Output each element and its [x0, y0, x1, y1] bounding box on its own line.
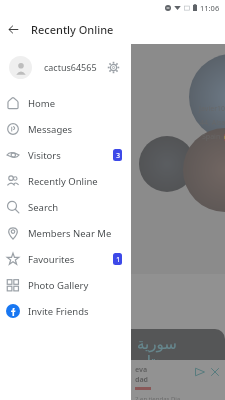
staticText: Favourites [28, 253, 75, 266]
button[interactable]: cactus64565 [0, 50, 131, 84]
staticText: Visitors [28, 149, 61, 162]
staticText: Recently Online [28, 175, 98, 188]
staticText: eva [135, 365, 148, 375]
button[interactable]: Invite Friends [0, 298, 131, 324]
button[interactable]: Search [0, 194, 131, 220]
button[interactable]: Recently Online [0, 168, 131, 194]
staticText: Recently Online [31, 22, 114, 37]
button[interactable]: Photo Gallery [0, 272, 131, 298]
button[interactable]: Settings [105, 59, 121, 75]
staticText: Search [28, 201, 59, 214]
staticText: Members Near Me [28, 227, 112, 240]
staticText: 3 [116, 151, 120, 160]
staticText: dad [135, 375, 149, 385]
button[interactable]: Home [0, 90, 131, 116]
staticText: Javier10919 [199, 104, 225, 114]
staticText: cactus64565 [44, 61, 97, 73]
button[interactable]: Members Near Me [0, 220, 131, 246]
staticText: سورية [137, 335, 177, 352]
staticText: 44, Alsasua [200, 118, 225, 128]
staticText: Home [28, 97, 56, 110]
staticText: 11:06 [200, 3, 220, 12]
staticText: 2 en tiendas Dia [135, 395, 181, 400]
staticText: Invite Friends [28, 305, 89, 318]
staticText: محتاج [137, 352, 174, 369]
button[interactable]: Favourites [0, 246, 131, 272]
button[interactable]: Visitors [0, 142, 131, 168]
staticText: 1 [116, 255, 120, 264]
staticText: Photo Gallery [28, 279, 89, 292]
staticText: Spain [202, 132, 221, 142]
button[interactable]: Back [7, 23, 20, 36]
button[interactable]: Messages [0, 116, 131, 142]
staticText: Messages [28, 123, 73, 136]
